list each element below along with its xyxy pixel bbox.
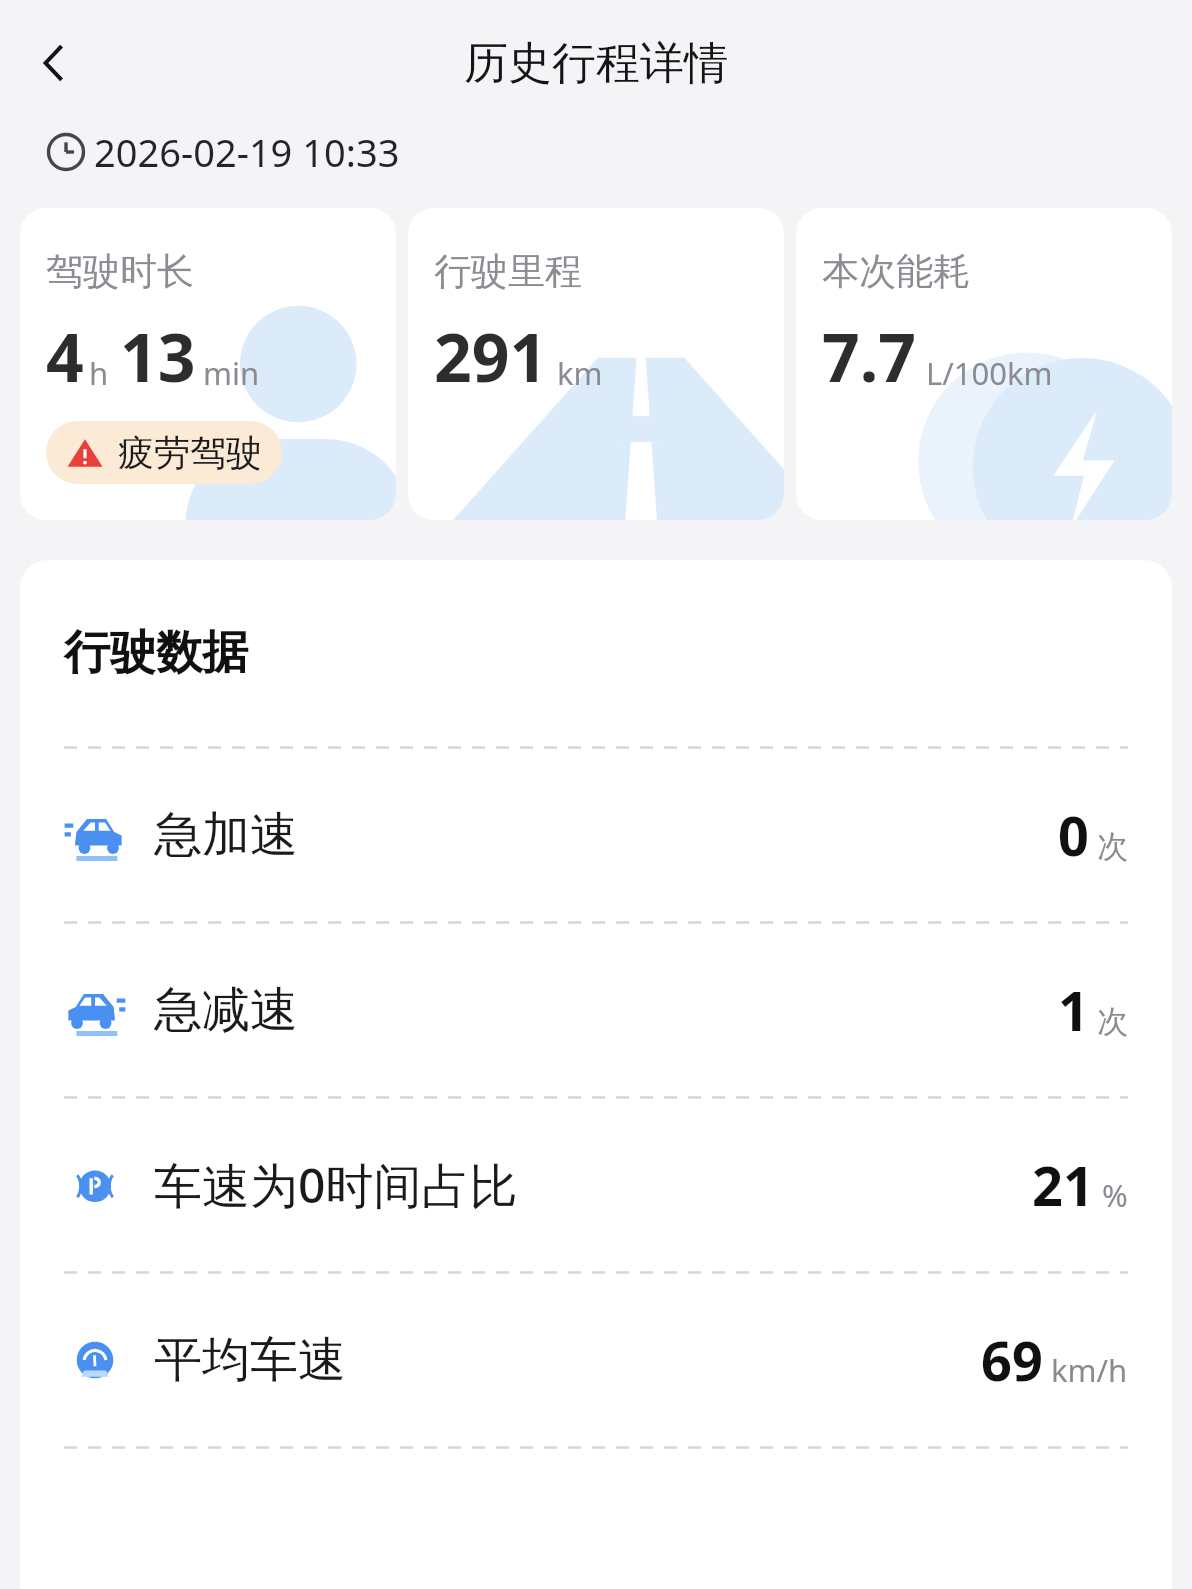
staticText: 急加速 xyxy=(154,805,298,865)
button[interactable]: Back xyxy=(16,25,92,101)
staticText: 行驶数据 xyxy=(64,624,248,682)
staticText: 平均车速 xyxy=(154,1330,346,1390)
staticText: km xyxy=(557,352,603,394)
staticText: 次 xyxy=(1097,1002,1128,1041)
staticText: 行驶里程 xyxy=(434,248,582,295)
staticText: 4 xyxy=(46,311,84,401)
staticText: 疲劳驾驶 xyxy=(118,430,262,475)
staticText: 69 xyxy=(981,1323,1043,1397)
staticText: 急减速 xyxy=(154,980,298,1040)
staticText: 291 xyxy=(434,311,548,401)
staticText: 驾驶时长 xyxy=(46,248,194,295)
staticText: 1 xyxy=(1058,973,1089,1047)
button[interactable]: 行驶里程 xyxy=(408,208,784,520)
staticText: % xyxy=(1102,1174,1128,1216)
button[interactable]: 车速为0时间占比 xyxy=(64,1099,1128,1271)
staticText: 车速为0时间占比 xyxy=(154,1152,518,1218)
staticText: min xyxy=(203,352,260,394)
staticText: 次 xyxy=(1097,827,1128,866)
button[interactable]: 急加速 xyxy=(64,749,1128,921)
staticText: 历史行程详情 xyxy=(464,36,728,91)
staticText: km/h xyxy=(1051,1349,1128,1391)
button[interactable]: 急减速 xyxy=(64,924,1128,1096)
button[interactable]: 驾驶时长 xyxy=(20,208,396,520)
button[interactable]: 平均车速 xyxy=(64,1274,1128,1446)
button[interactable]: 疲劳驾驶 xyxy=(66,430,262,475)
staticText: 本次能耗 xyxy=(822,248,970,295)
staticText: 7.7 xyxy=(822,311,917,401)
staticText: 2026-02-19 10:33 xyxy=(94,126,400,178)
staticText: 13 xyxy=(120,311,196,401)
staticText: h xyxy=(89,352,109,394)
staticText: L/100km xyxy=(926,352,1053,394)
button[interactable]: 本次能耗 xyxy=(796,208,1172,520)
staticText: 0 xyxy=(1058,798,1089,872)
staticText: 21 xyxy=(1032,1148,1094,1222)
